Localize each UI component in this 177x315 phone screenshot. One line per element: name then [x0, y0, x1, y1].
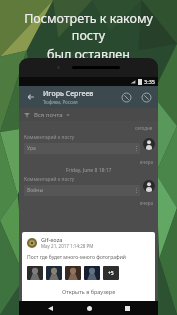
button[interactable]: Recents: [120, 301, 134, 315]
button[interactable]: Ура: [24, 143, 140, 154]
button[interactable]: Back: [43, 301, 57, 315]
staticText: Пост где будет много-много фотографий: [27, 254, 126, 261]
staticText: Посмотреть к какому посту: [6, 10, 171, 44]
staticText: вчера: [140, 159, 153, 165]
staticText: Комментарий к посту: [24, 176, 75, 183]
button[interactable]: Block: [138, 89, 154, 105]
button[interactable]: Home: [82, 301, 96, 315]
button[interactable]: More photos: [103, 266, 119, 280]
staticText: Войны: [27, 187, 44, 194]
staticText: +5: [108, 270, 114, 277]
button[interactable]: Вся почта: [24, 108, 153, 121]
button[interactable]: Открыть в браузере: [27, 285, 150, 297]
staticText: May 21, 2017 1:14:28 PM: [41, 243, 94, 249]
button[interactable]: Photo: [84, 266, 100, 280]
button[interactable]: Photo: [46, 266, 62, 280]
button[interactable]: Photo: [65, 266, 81, 280]
staticText: Открыть в браузере: [62, 288, 116, 295]
staticText: Вся почта: [34, 111, 63, 119]
button[interactable]: Войны: [24, 185, 140, 196]
staticText: 3:35: [144, 78, 155, 85]
button[interactable]: Back: [23, 89, 39, 105]
staticText: Комментарий к посту: [24, 134, 75, 141]
staticText: был оставлен комментарий: [6, 46, 171, 80]
staticText: Gif-eoza: [41, 236, 63, 243]
staticText: Ура: [27, 145, 36, 152]
staticText: Friday, June 8 18:17: [66, 167, 112, 174]
staticText: сегодня: [135, 125, 153, 131]
button[interactable]: Call: [118, 89, 134, 105]
button[interactable]: Photo: [27, 266, 43, 280]
staticText: Игорь Сергеев: [43, 89, 94, 99]
staticText: вчера: [140, 200, 153, 206]
staticText: Тюфяки, Россия: [43, 99, 78, 105]
